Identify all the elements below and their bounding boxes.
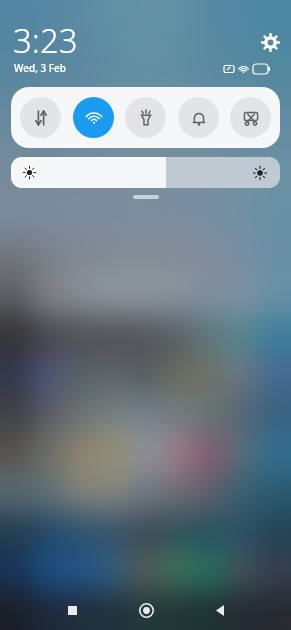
button[interactable]: Ring bbox=[178, 97, 219, 138]
staticText: 3:23 bbox=[13, 18, 78, 63]
button[interactable]: Home bbox=[109, 590, 183, 630]
button[interactable]: Settings bbox=[261, 33, 280, 52]
button[interactable]: Screenshot bbox=[230, 97, 271, 138]
button[interactable]: Brightness bbox=[11, 157, 280, 188]
staticText: Wed, 3 Feb bbox=[14, 61, 67, 75]
button[interactable]: Flashlight bbox=[125, 97, 166, 138]
button[interactable]: Recents bbox=[35, 590, 109, 630]
button[interactable]: Mobile data bbox=[20, 97, 61, 138]
button[interactable]: Wi-Fi bbox=[73, 97, 114, 138]
button[interactable]: Back bbox=[183, 590, 257, 630]
